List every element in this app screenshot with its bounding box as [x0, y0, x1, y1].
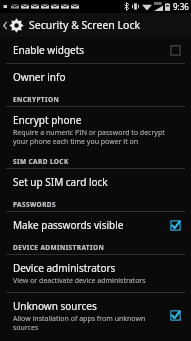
button[interactable]: Enable widgets [0, 37, 191, 63]
button[interactable]: Unknown sources [0, 293, 191, 338]
button[interactable]: Checked [169, 219, 182, 232]
staticText: SIM CARD LOCK [13, 157, 69, 166]
staticText: Encrypt phone [13, 113, 82, 127]
button[interactable]: Set up SIM card lock [0, 169, 191, 195]
staticText: Make passwords visible [13, 218, 124, 232]
staticText: 9:36 [173, 1, 189, 12]
staticText: PASSWORDS [13, 200, 56, 209]
staticText: DEVICE ADMINISTRATION [13, 243, 105, 252]
staticText: Device administrators [13, 261, 116, 275]
button[interactable]: Encrypt phone [0, 107, 191, 152]
staticText: Set up SIM card lock [13, 175, 108, 189]
staticText: View or deactivate device administrators [13, 276, 146, 286]
button[interactable]: Navigate up: Security & Screen Lock [0, 13, 191, 37]
button[interactable]: Owner info [0, 64, 191, 90]
staticText: Require a numeric PIN or password to dec… [13, 128, 165, 146]
staticText: Security & Screen Lock [29, 18, 141, 32]
button[interactable]: Checked [169, 309, 182, 322]
button[interactable]: Make passwords visible [0, 212, 191, 238]
staticText: Allow installation of apps from unknown … [13, 314, 146, 332]
staticText: ENCRYPTION [13, 95, 60, 104]
staticText: Enable widgets [13, 43, 85, 57]
staticText: Owner info [13, 70, 66, 84]
staticText: Unknown sources [13, 299, 97, 313]
button[interactable]: Device administrators [0, 255, 191, 292]
button[interactable]: Unchecked [169, 44, 182, 57]
